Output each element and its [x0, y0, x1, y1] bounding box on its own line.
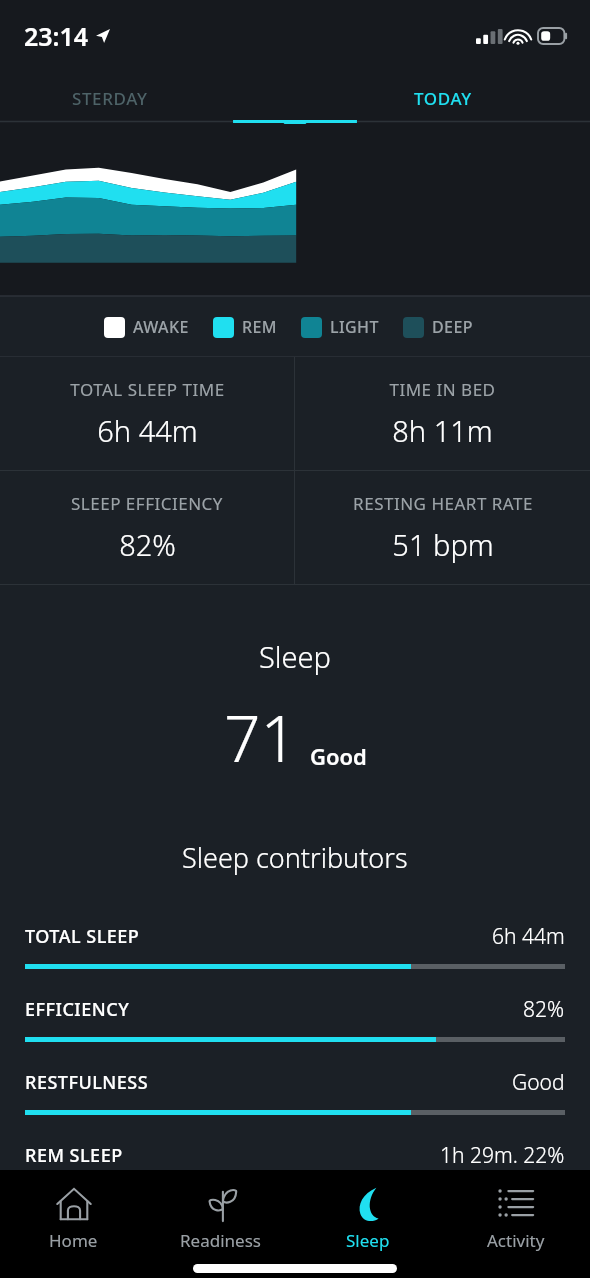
staticText: REM SLEEP — [25, 1143, 123, 1168]
button[interactable]: RESTFULNESS — [25, 1068, 565, 1115]
staticText: Sleep contributors — [182, 839, 408, 876]
staticText: Home — [49, 1229, 98, 1252]
staticText: 8h 11m — [392, 411, 493, 450]
staticText: 1h 29m. 22% — [440, 1141, 565, 1170]
staticText: Sleep — [259, 637, 331, 676]
staticText: 23:14 — [24, 19, 89, 53]
staticText: RESTING HEART RATE — [353, 492, 533, 515]
staticText: Good — [310, 741, 367, 771]
staticText: REM — [242, 316, 277, 338]
button[interactable]: SLEEP EFFICIENCY — [0, 471, 294, 584]
staticText: Good — [512, 1068, 565, 1097]
button[interactable]: REM SLEEP — [25, 1141, 565, 1170]
button[interactable]: TODAY — [295, 72, 590, 124]
button[interactable]: TIME IN BED — [295, 357, 590, 470]
staticText: TIME IN BED — [389, 378, 496, 401]
staticText: 82% — [523, 995, 565, 1024]
staticText: DEEP — [432, 316, 473, 338]
staticText: 6h 44m — [97, 411, 198, 450]
staticText: RESTFULNESS — [25, 1070, 149, 1095]
staticText: SLEEP EFFICIENCY — [71, 492, 223, 515]
staticText: AWAKE — [133, 316, 189, 338]
button[interactable]: Home — [0, 1170, 147, 1266]
staticText: STERDAY — [72, 87, 148, 110]
staticText: 82% — [119, 525, 176, 564]
button[interactable]: TOTAL SLEEP — [25, 922, 565, 969]
staticText: TOTAL SLEEP — [25, 924, 140, 949]
button[interactable]: Readiness — [147, 1170, 294, 1266]
button[interactable]: Sleep — [294, 1170, 442, 1266]
staticText: 51 bpm — [392, 525, 494, 564]
button[interactable]: STERDAY — [0, 72, 295, 124]
button[interactable]: EFFICIENCY — [25, 995, 565, 1042]
staticText: Readiness — [180, 1229, 261, 1252]
staticText: Sleep — [346, 1229, 390, 1252]
staticText: 6h 44m — [492, 922, 565, 951]
staticText: Activity — [487, 1229, 545, 1252]
button[interactable]: TOTAL SLEEP TIME — [0, 357, 294, 470]
staticText: TOTAL SLEEP TIME — [70, 378, 225, 401]
staticText: LIGHT — [330, 316, 379, 338]
staticText: 71 — [224, 694, 298, 781]
button[interactable]: RESTING HEART RATE — [295, 471, 590, 584]
staticText: TODAY — [414, 87, 472, 110]
button[interactable]: Activity — [442, 1170, 590, 1266]
staticText: EFFICIENCY — [25, 997, 130, 1022]
